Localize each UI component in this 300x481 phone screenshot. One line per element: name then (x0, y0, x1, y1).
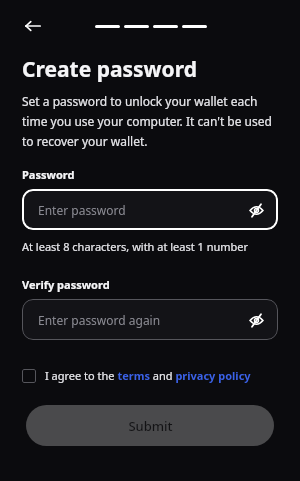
staticText: Set a password to unlock your wallet eac… (22, 93, 280, 149)
staticText: Submit (128, 417, 173, 435)
button[interactable]: Enter password again (22, 299, 278, 340)
button[interactable]: Show verify password (244, 308, 268, 332)
staticText: Verify password (22, 277, 110, 292)
staticText: Enter password again (38, 312, 161, 328)
staticText: At least 8 characters, with at least 1 n… (22, 239, 249, 254)
button[interactable]: I agree to the terms and privacy policy (22, 368, 280, 383)
staticText: I agree to the terms and privacy policy (45, 368, 251, 383)
staticText: Password (22, 167, 75, 182)
button[interactable]: Show password (244, 198, 268, 222)
button[interactable]: Submit (26, 405, 274, 446)
staticText: Create password (22, 55, 197, 84)
button[interactable]: Back (18, 13, 48, 39)
button[interactable]: Enter password (22, 189, 278, 230)
staticText: Enter password (38, 202, 126, 218)
